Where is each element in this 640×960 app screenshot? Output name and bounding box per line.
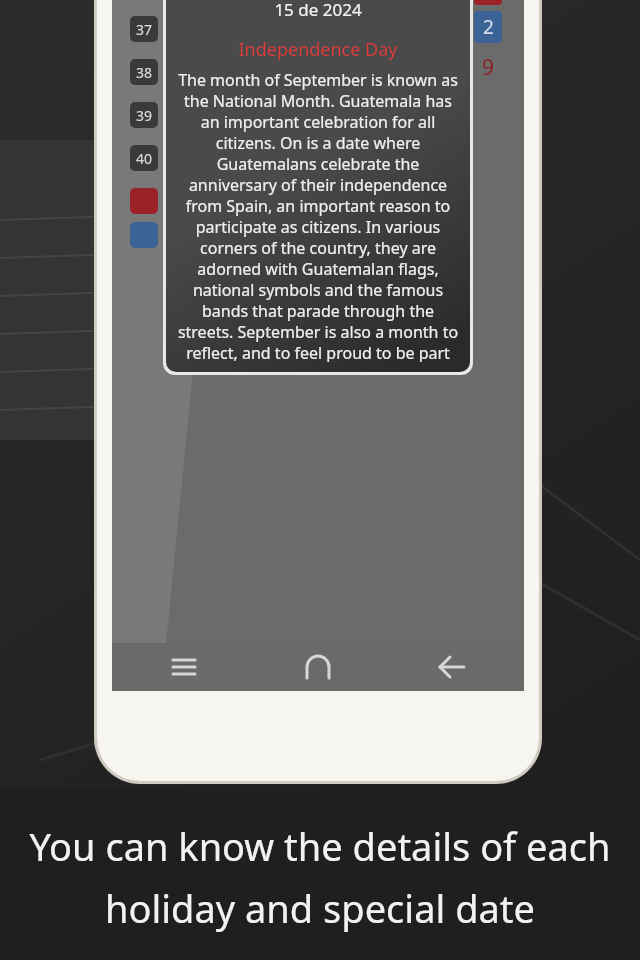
staticText: 2 [483, 14, 494, 40]
staticText: 38 [136, 63, 153, 82]
button[interactable]: 2 [474, 11, 502, 43]
button[interactable]: Back [428, 643, 476, 691]
staticText: The month of September is known as the N… [177, 69, 459, 362]
button[interactable]: 37 [130, 16, 158, 42]
button[interactable]: September 15, 2024 / Septiembre 15 de 20… [166, 0, 470, 372]
button[interactable]: Menu [160, 643, 208, 691]
button[interactable]: 38 [130, 59, 158, 85]
staticText: holiday and special date [0, 882, 640, 934]
staticText: September 15, 2024 / Septiembre 15 de 20… [177, 0, 459, 21]
button[interactable]: 5 [474, 0, 502, 5]
staticText: 9 [482, 53, 495, 82]
staticText: 37 [136, 20, 153, 39]
staticText: 40 [136, 149, 153, 168]
button[interactable]: 39 [130, 102, 158, 128]
button[interactable]: 40 [130, 145, 158, 171]
staticText: 39 [136, 106, 153, 125]
staticText: Independence Day [177, 37, 459, 62]
button[interactable] [130, 188, 158, 214]
staticText: You can know the details of each [0, 820, 640, 872]
button[interactable] [130, 222, 158, 248]
button[interactable]: Home [294, 643, 342, 691]
